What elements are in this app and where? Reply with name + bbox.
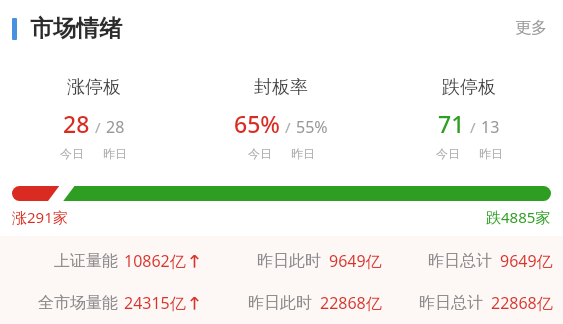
staticText: 28 (63, 108, 90, 139)
staticText: 昨日此时 (248, 293, 312, 313)
button[interactable]: 更多 (499, 10, 563, 46)
staticText: / (95, 117, 101, 137)
staticText: 55% (296, 116, 328, 138)
staticText: 昨日 (479, 146, 503, 161)
staticText: 9649亿 (500, 250, 553, 272)
staticText: 涨停板 (67, 76, 121, 99)
staticText: 今日 (436, 146, 460, 161)
staticText: 涨291家 (12, 207, 68, 227)
staticText: 全市场量能 (38, 293, 118, 313)
staticText: 13 (481, 116, 500, 138)
button[interactable]: 封板率 (187, 76, 375, 161)
button[interactable]: 涨停板 (0, 76, 187, 161)
staticText: 上证量能 (54, 251, 118, 271)
button[interactable]: 涨跌家数比例 (12, 186, 551, 201)
staticText: 昨日 (291, 146, 315, 161)
staticText: 封板率 (254, 76, 308, 99)
staticText: 24315亿 (124, 292, 186, 314)
staticText: 71 (438, 108, 465, 139)
staticText: 28 (106, 116, 125, 138)
staticText: 昨日总计 (428, 251, 492, 271)
staticText: 今日 (248, 146, 272, 161)
button[interactable]: 跌停板 (375, 76, 563, 161)
staticText: 昨日总计 (419, 293, 483, 313)
staticText: 更多 (515, 18, 547, 38)
staticText: 65% (234, 108, 280, 139)
staticText: 昨日 (103, 146, 127, 161)
staticText: 昨日此时 (257, 251, 321, 271)
staticText: / (470, 117, 476, 137)
staticText: 22868亿 (320, 292, 382, 314)
staticText: 22868亿 (491, 292, 553, 314)
staticText: 今日 (60, 146, 84, 161)
staticText: 10862亿 (124, 250, 186, 272)
staticText: 市场情绪 (30, 14, 122, 43)
button[interactable]: 市场情绪 (12, 14, 122, 43)
staticText: 跌4885家 (486, 207, 551, 227)
staticText: 9649亿 (329, 250, 382, 272)
staticText: 跌停板 (442, 76, 496, 99)
staticText: / (285, 117, 291, 137)
